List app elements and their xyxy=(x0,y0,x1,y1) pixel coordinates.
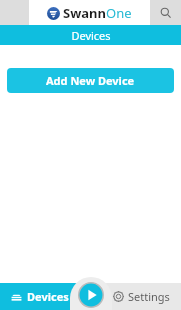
button[interactable]: Devices xyxy=(0,283,90,310)
staticText: Swann xyxy=(63,4,106,22)
button[interactable]: Settings xyxy=(90,283,181,310)
staticText: One xyxy=(106,4,132,22)
button[interactable]: Search xyxy=(150,0,181,25)
button[interactable]: Add New Device xyxy=(7,68,174,93)
button[interactable]: Play xyxy=(70,277,112,310)
staticText: Devices xyxy=(27,289,69,304)
staticText: Devices xyxy=(71,28,111,43)
staticText: Add New Device xyxy=(46,73,135,88)
staticText: Settings xyxy=(128,289,170,304)
